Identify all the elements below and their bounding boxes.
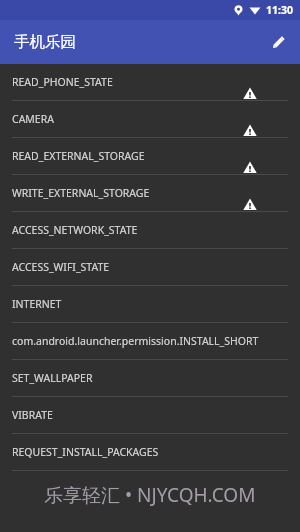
staticText: 乐享轻汇 • NJYCQH.COM bbox=[44, 482, 256, 508]
staticText: INTERNET bbox=[12, 297, 62, 311]
staticText: com.android.launcher.permission.INSTALL_… bbox=[12, 334, 260, 348]
button[interactable]: WRITE_EXTERNAL_STORAGE bbox=[0, 175, 300, 212]
button[interactable]: READ_EXTERNAL_STORAGE bbox=[0, 138, 300, 175]
button[interactable]: CAMERA bbox=[0, 101, 300, 138]
staticText: READ_EXTERNAL_STORAGE bbox=[12, 149, 145, 163]
staticText: SET_WALLPAPER bbox=[12, 371, 93, 385]
staticText: CAMERA bbox=[12, 112, 54, 126]
staticText: 11:30 bbox=[266, 3, 293, 17]
button[interactable]: ACCESS_WIFI_STATE bbox=[0, 249, 300, 286]
button[interactable]: Edit bbox=[263, 27, 293, 57]
staticText: REQUEST_INSTALL_PACKAGES bbox=[12, 445, 159, 459]
button[interactable]: VIBRATE bbox=[0, 397, 300, 434]
staticText: ACCESS_WIFI_STATE bbox=[12, 260, 110, 274]
button[interactable]: com.android.launcher.permission.INSTALL_… bbox=[0, 323, 300, 360]
staticText: ACCESS_NETWORK_STATE bbox=[12, 223, 138, 237]
button[interactable]: ACCESS_NETWORK_STATE bbox=[0, 212, 300, 249]
button[interactable]: READ_PHONE_STATE bbox=[0, 64, 300, 101]
staticText: 手机乐园 bbox=[14, 32, 76, 52]
staticText: VIBRATE bbox=[12, 408, 53, 422]
button[interactable]: INTERNET bbox=[0, 286, 300, 323]
button[interactable]: REQUEST_INSTALL_PACKAGES bbox=[0, 434, 300, 471]
staticText: READ_PHONE_STATE bbox=[12, 75, 113, 89]
staticText: WRITE_EXTERNAL_STORAGE bbox=[12, 186, 150, 200]
button[interactable]: SET_WALLPAPER bbox=[0, 360, 300, 397]
